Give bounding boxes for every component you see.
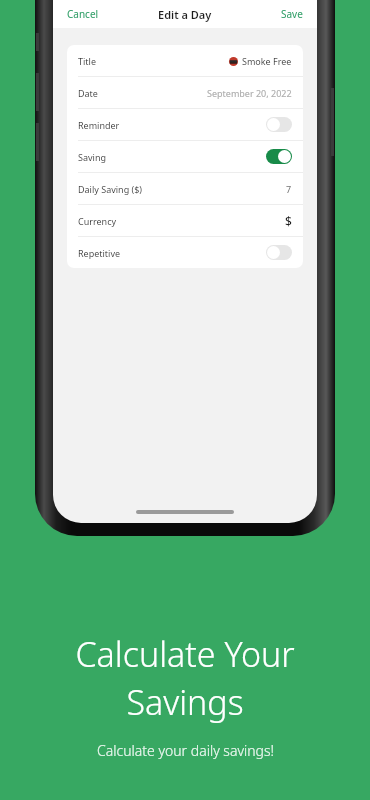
staticText: Saving xyxy=(78,151,106,163)
staticText: Save xyxy=(281,7,303,21)
button[interactable]: Reminder xyxy=(67,109,303,141)
button[interactable]: Repetitive xyxy=(67,237,303,268)
staticText: September 20, 2022 xyxy=(207,87,292,99)
button[interactable]: Daily Saving ($) xyxy=(67,173,303,205)
staticText: Daily Saving ($) xyxy=(78,183,143,195)
button[interactable]: Cancel xyxy=(61,3,105,25)
staticText: Repetitive xyxy=(78,247,121,259)
staticText: Reminder xyxy=(78,119,120,131)
staticText: Title xyxy=(78,55,96,67)
staticText: Smoke Free xyxy=(242,55,292,67)
button[interactable]: Saving xyxy=(67,141,303,173)
button[interactable]: Toggle off xyxy=(266,117,292,132)
staticText: Cancel xyxy=(67,7,99,21)
button[interactable]: Date xyxy=(67,77,303,109)
button[interactable]: Toggle on xyxy=(266,149,292,164)
button[interactable]: Toggle off xyxy=(266,245,292,260)
staticText: 7 xyxy=(286,183,292,195)
button[interactable]: Save xyxy=(275,3,309,25)
staticText: $ xyxy=(285,213,292,229)
button[interactable]: Currency xyxy=(67,205,303,237)
button[interactable]: Title xyxy=(67,45,303,77)
staticText: Savings xyxy=(126,679,244,725)
staticText: Calculate your daily savings! xyxy=(97,741,274,760)
staticText: Calculate Your xyxy=(75,631,295,677)
staticText: Edit a Day xyxy=(158,7,212,22)
staticText: Date xyxy=(78,87,98,99)
staticText: Currency xyxy=(78,215,117,227)
